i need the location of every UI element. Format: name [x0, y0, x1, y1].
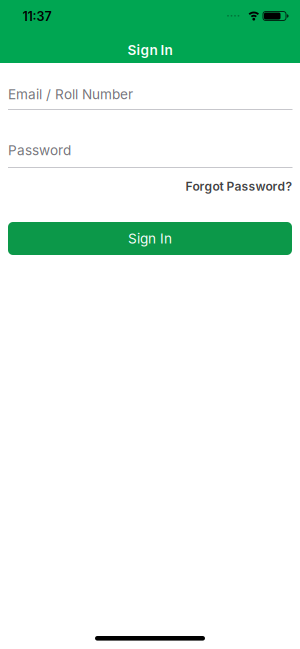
staticText: Password	[8, 142, 71, 158]
staticText: 11:37	[22, 9, 51, 24]
staticText: Sign In	[128, 230, 172, 247]
staticText: Email / Roll Number	[8, 86, 133, 102]
button[interactable]: Forgot Password?	[185, 179, 292, 194]
button[interactable]: Password	[8, 135, 292, 168]
staticText: Sign In	[127, 42, 172, 58]
button[interactable]: Email / Roll Number	[8, 79, 292, 110]
button[interactable]: Sign In	[8, 222, 292, 255]
staticText: Forgot Password?	[185, 179, 292, 194]
